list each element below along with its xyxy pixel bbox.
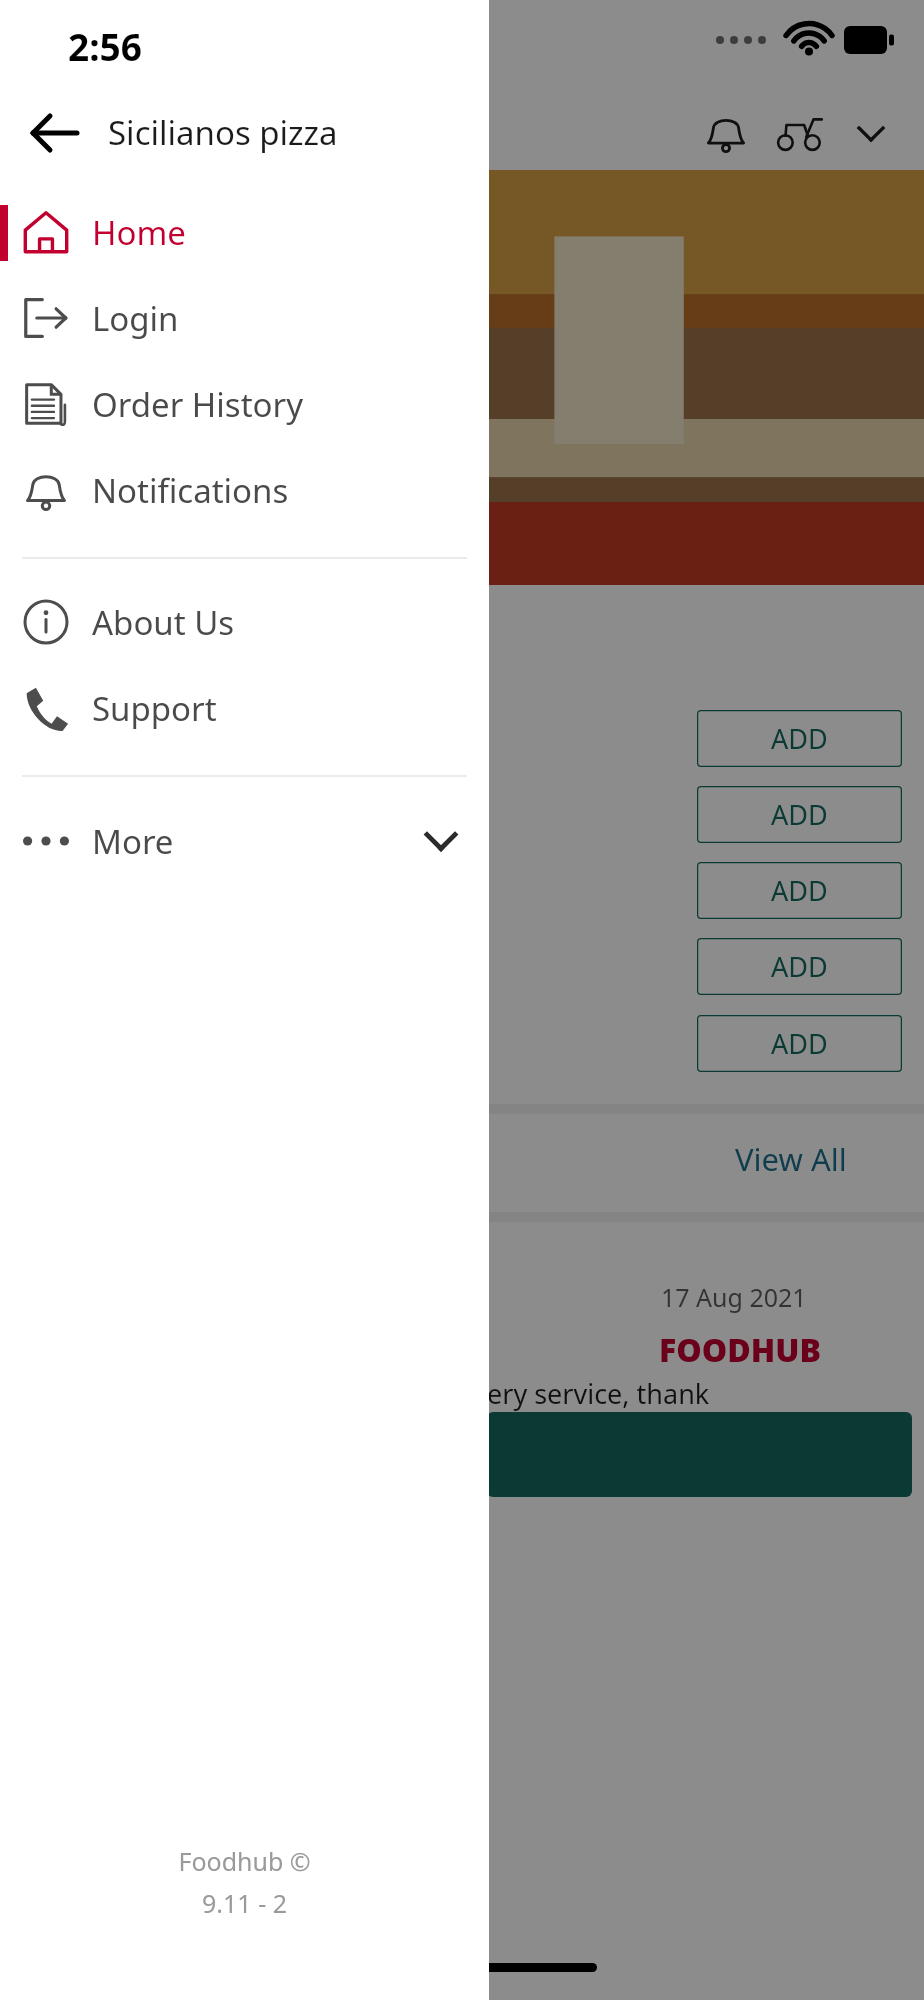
button[interactable]: Expand xyxy=(840,102,902,164)
staticText: Foodhub © xyxy=(178,1844,311,1878)
button[interactable]: Order History xyxy=(0,371,489,437)
staticText: More xyxy=(92,819,174,864)
button[interactable]: Back xyxy=(24,102,86,164)
button[interactable]: ADD xyxy=(697,938,902,995)
button[interactable] xyxy=(487,1412,912,1497)
staticText: ADD xyxy=(771,872,828,909)
staticText: Order History xyxy=(92,382,303,427)
button[interactable]: Support xyxy=(0,675,489,741)
staticText: ADD xyxy=(771,1025,828,1062)
staticText: ADD xyxy=(771,796,828,833)
button[interactable]: Home xyxy=(0,199,489,265)
staticText: ADD xyxy=(771,720,828,757)
staticText: ery service, thank xyxy=(487,1375,710,1412)
button[interactable]: ADD xyxy=(697,1015,902,1072)
button[interactable]: Notifications xyxy=(690,97,762,169)
staticText: 5.50 xyxy=(425,798,483,837)
staticText: Login xyxy=(92,296,179,341)
staticText: 9.11 - 2 xyxy=(202,1886,287,1920)
button[interactable]: Login xyxy=(0,285,489,351)
staticText: ADD xyxy=(771,948,828,985)
staticText: About Us xyxy=(92,600,235,645)
staticText: 17 Aug 2021 xyxy=(661,1280,807,1314)
button[interactable]: ADD xyxy=(697,862,902,919)
button[interactable]: Delivery xyxy=(762,95,840,170)
button[interactable]: About Us xyxy=(0,589,489,655)
button[interactable]: Notifications xyxy=(0,457,489,523)
staticText: FOODHUB xyxy=(659,1328,822,1372)
button[interactable]: More xyxy=(0,808,489,874)
staticText: Home xyxy=(92,210,186,255)
staticText: Sicilianos pizza xyxy=(108,110,338,155)
button[interactable]: ADD xyxy=(697,710,902,767)
staticText: Support xyxy=(92,686,217,731)
staticText: 2:56 xyxy=(68,21,142,71)
button[interactable]: View All xyxy=(735,1138,847,1180)
staticText: Notifications xyxy=(92,468,289,513)
button[interactable]: ADD xyxy=(697,786,902,843)
